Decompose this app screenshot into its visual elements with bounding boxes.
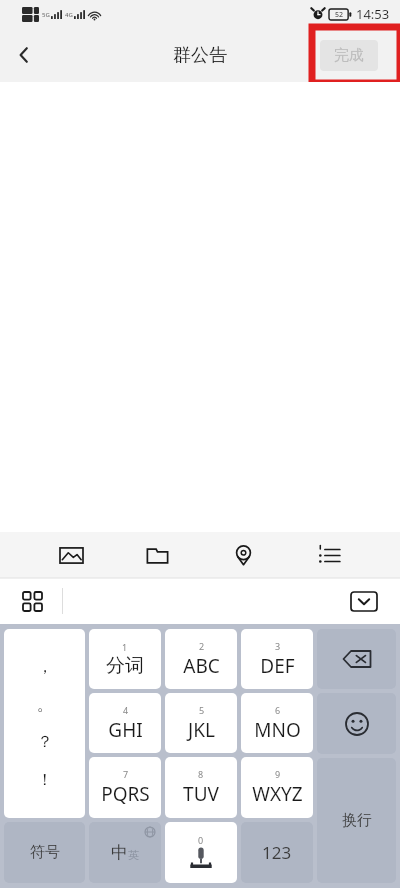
button[interactable]: 7 (89, 757, 161, 818)
staticText: 3 (275, 640, 281, 652)
staticText: TUV (183, 781, 219, 807)
button[interactable]: 8 (165, 757, 237, 818)
button[interactable]: ， (4, 629, 85, 818)
staticText: 中 (111, 842, 128, 863)
staticText: 8 (198, 768, 204, 780)
button[interactable]: 5 (165, 693, 237, 753)
button[interactable]: 1 (89, 629, 161, 689)
button[interactable]: Keyboard layouts (10, 579, 54, 623)
button[interactable]: 6 (241, 693, 313, 753)
button[interactable]: 符号 (4, 822, 85, 883)
staticText: JKL (188, 717, 215, 743)
staticText: DEF (260, 653, 295, 679)
button[interactable]: Back (0, 31, 48, 79)
button[interactable]: Hide keyboard (342, 579, 386, 623)
staticText: 4G (65, 11, 73, 19)
button[interactable]: Emoji (317, 693, 396, 754)
button[interactable]: 换行 (317, 758, 396, 883)
staticText: 符号 (30, 843, 60, 862)
staticText: 7 (123, 768, 129, 780)
staticText: 英 (128, 848, 139, 862)
button[interactable]: 中 (89, 822, 161, 883)
button[interactable]: 4 (89, 693, 161, 753)
staticText: 2 (199, 640, 205, 652)
button[interactable]: List (306, 532, 352, 578)
button[interactable]: 完成 (320, 40, 378, 71)
staticText: 群公告 (173, 44, 227, 67)
staticText: 0 (198, 834, 204, 846)
staticText: ABC (183, 653, 220, 679)
staticText: 52 (335, 10, 344, 20)
button[interactable]: Location (220, 532, 266, 578)
staticText: 14:53 (356, 5, 390, 23)
staticText: WXYZ (252, 781, 303, 807)
staticText: 4 (123, 704, 129, 716)
staticText: ！ (37, 770, 53, 790)
staticText: GHI (108, 717, 143, 743)
staticText: 9 (275, 768, 281, 780)
button[interactable]: 3 (241, 629, 313, 689)
staticText: 换行 (342, 811, 372, 830)
staticText: PQRS (101, 781, 150, 807)
staticText: ？ (37, 732, 53, 752)
button[interactable]: 123 (241, 822, 313, 883)
staticText: ， (37, 657, 53, 677)
staticText: 1 (122, 641, 128, 653)
button[interactable]: Files (134, 532, 180, 578)
staticText: 5 (199, 704, 205, 716)
button[interactable]: 0 (165, 822, 237, 883)
button[interactable]: Image (48, 532, 94, 578)
button[interactable]: 9 (241, 757, 313, 818)
button[interactable]: 2 (165, 629, 237, 689)
staticText: MNO (254, 717, 301, 743)
staticText: 6 (275, 704, 281, 716)
staticText: 5G (42, 11, 50, 19)
button[interactable]: Backspace (317, 629, 396, 689)
staticText: 完成 (334, 46, 364, 65)
staticText: 。 (37, 695, 53, 715)
staticText: 123 (262, 841, 292, 864)
staticText: 分词 (106, 654, 144, 678)
